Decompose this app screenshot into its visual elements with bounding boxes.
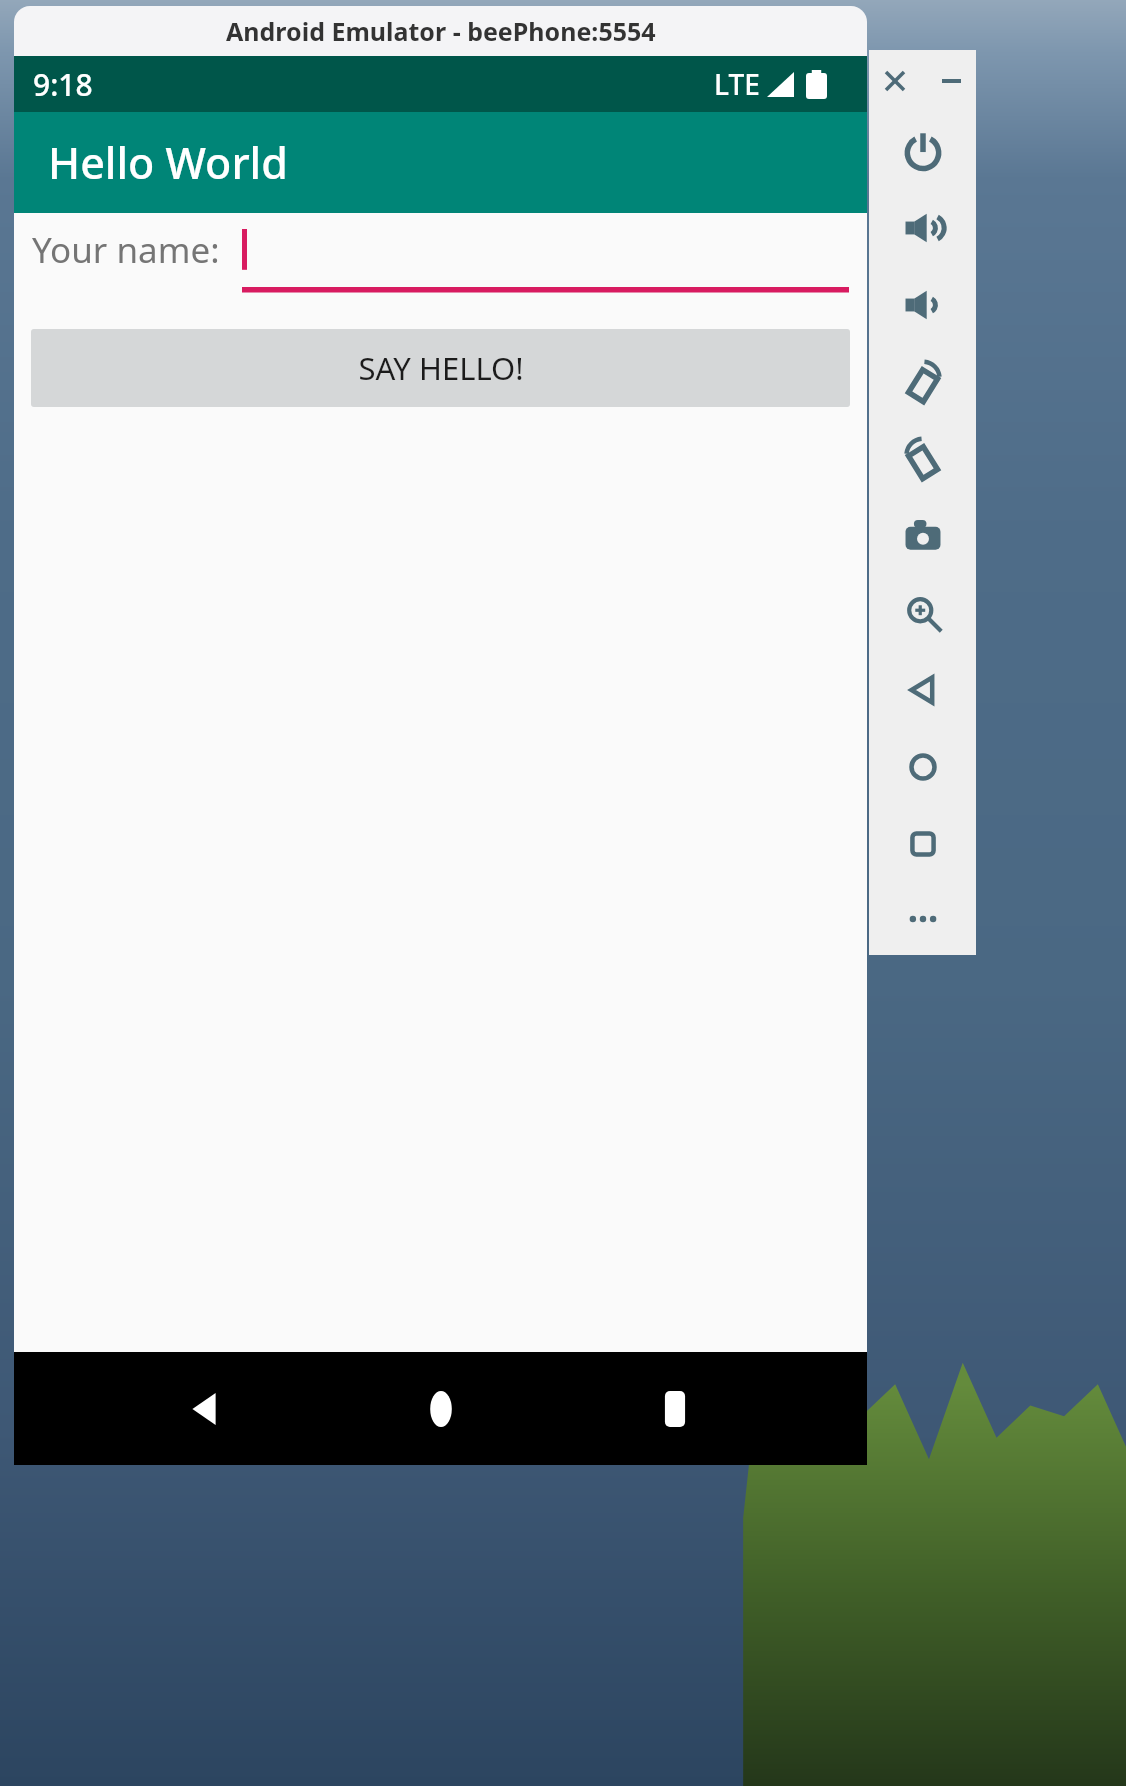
button[interactable]: Take screenshot: [869, 497, 976, 574]
staticText: SAY HELLO!: [358, 347, 524, 389]
button[interactable]: Close: [877, 63, 913, 99]
button[interactable]: [242, 225, 849, 293]
button[interactable]: SAY HELLO!: [31, 329, 850, 407]
staticText: Android Emulator - beePhone:5554: [226, 14, 656, 48]
button[interactable]: Power: [869, 112, 976, 189]
button[interactable]: Home: [398, 1366, 484, 1452]
button[interactable]: More options: [869, 882, 976, 955]
button[interactable]: Overview: [869, 805, 976, 882]
button[interactable]: Recents: [632, 1366, 718, 1452]
button[interactable]: Rotate right: [869, 420, 976, 497]
button[interactable]: Back: [163, 1366, 249, 1452]
button[interactable]: Rotate left: [869, 343, 976, 420]
button[interactable]: Volume down: [869, 266, 976, 343]
button[interactable]: Minimize: [933, 63, 969, 99]
staticText: Your name:: [32, 226, 220, 274]
button[interactable]: Back: [869, 651, 976, 728]
staticText: LTE: [714, 65, 760, 103]
staticText: 9:18: [33, 64, 93, 105]
button[interactable]: Home: [869, 728, 976, 805]
button[interactable]: Volume up: [869, 189, 976, 266]
button[interactable]: Zoom in: [869, 574, 976, 651]
staticText: Hello World: [48, 133, 288, 192]
